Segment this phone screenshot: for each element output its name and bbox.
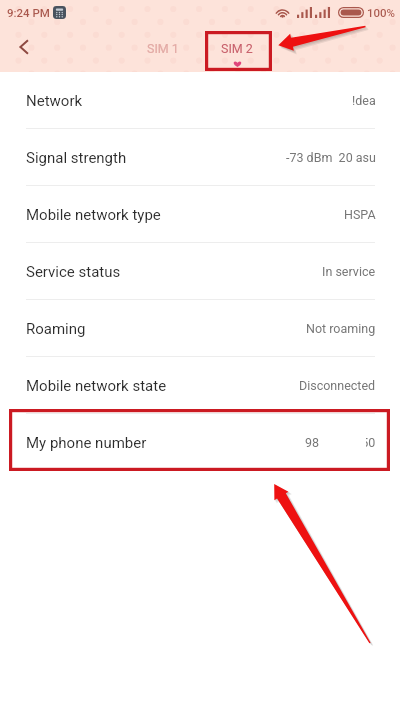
button[interactable]: SIM 1 [126, 41, 200, 71]
staticText: !dea [352, 93, 376, 108]
button[interactable]: Network [0, 72, 400, 129]
button[interactable]: Mobile network type [0, 186, 400, 243]
staticText: Disconnected [299, 378, 376, 393]
staticText: 9812345650 [305, 435, 376, 450]
button[interactable]: Back [8, 31, 40, 63]
staticText: 100% [367, 6, 396, 19]
staticText: Roaming [26, 320, 86, 338]
staticText: Network [26, 92, 83, 110]
staticText: HSPA [344, 207, 376, 222]
staticText: 9:24 PM [7, 6, 50, 19]
staticText: Mobile network type [26, 206, 161, 224]
button[interactable]: Signal strength [0, 129, 400, 186]
staticText: Mobile network state [26, 377, 167, 395]
button[interactable]: Mobile network state [0, 357, 400, 414]
staticText: -73 dBm 20 asu [286, 150, 376, 165]
button[interactable]: My phone number [0, 414, 400, 471]
staticText: In service [322, 264, 376, 279]
button[interactable]: Service status [0, 243, 400, 300]
staticText: My phone number [26, 434, 147, 452]
staticText: SIM 2 [221, 41, 253, 56]
staticText: Signal strength [26, 149, 127, 167]
staticText: Service status [26, 263, 121, 281]
button[interactable]: Roaming [0, 300, 400, 357]
button[interactable]: SIM 2 [200, 41, 274, 71]
staticText: SIM 1 [147, 41, 179, 56]
staticText: Not roaming [306, 321, 376, 336]
